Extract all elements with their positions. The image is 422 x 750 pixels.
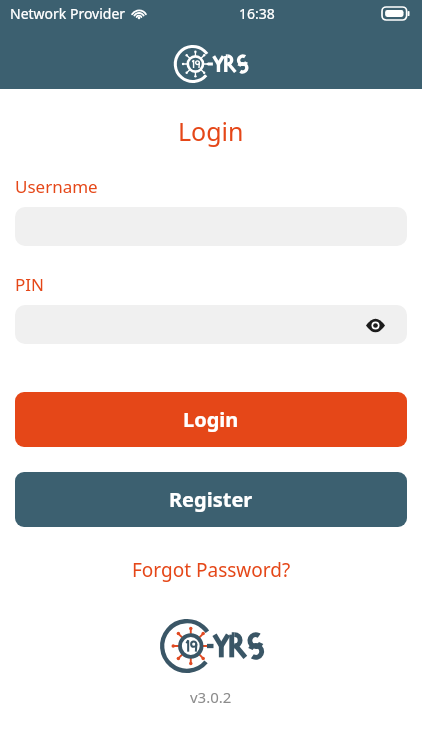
button[interactable]: Show PIN	[15, 305, 407, 344]
staticText: Register	[169, 486, 253, 513]
staticText: Login	[178, 114, 244, 148]
staticText: PIN	[15, 273, 44, 296]
button[interactable]: Login	[15, 392, 407, 447]
staticText: Login	[183, 406, 239, 433]
button[interactable]: Register	[15, 472, 407, 527]
staticText: Username	[15, 175, 98, 198]
staticText: Network Provider	[10, 4, 126, 23]
button[interactable]: Forgot Password?	[124, 553, 299, 587]
button[interactable]: Show PIN	[363, 313, 387, 337]
staticText: 16:38	[239, 4, 275, 23]
staticText: v3.0.2	[190, 687, 232, 707]
staticText: Forgot Password?	[132, 557, 291, 583]
